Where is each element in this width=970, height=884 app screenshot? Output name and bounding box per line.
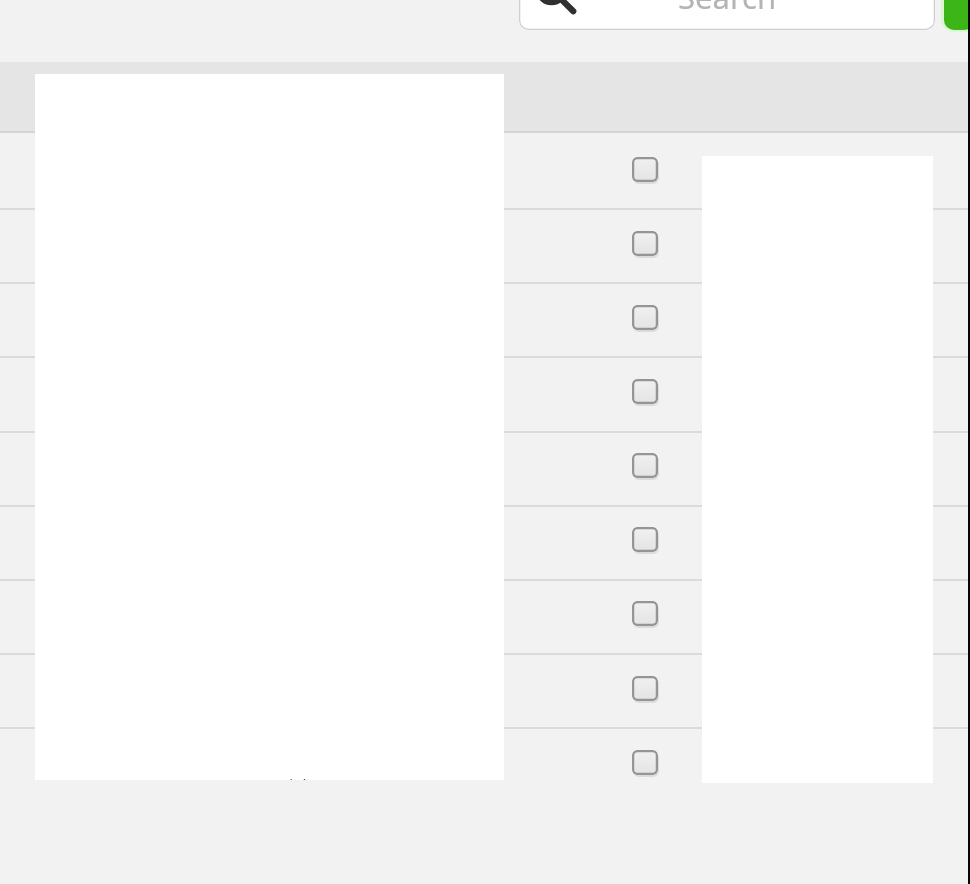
button[interactable]: Sort column	[0, 62, 970, 131]
button[interactable]: Select row 4	[632, 379, 658, 404]
button[interactable]: Select row 3	[632, 305, 658, 330]
button[interactable]: Add new	[944, 0, 970, 30]
button[interactable]: Select row 2	[632, 231, 658, 256]
button[interactable]: Select row 9	[632, 750, 658, 775]
staticText: Copyright	[248, 774, 318, 780]
button[interactable]: Select row 6	[632, 527, 658, 552]
button[interactable]: Select row 8	[632, 676, 658, 701]
staticText: Search	[678, 0, 777, 18]
button[interactable]: Search	[519, 0, 935, 30]
button[interactable]: Select row 1	[632, 157, 658, 182]
button[interactable]: Select row 7	[632, 601, 658, 626]
button[interactable]: Select row 5	[632, 453, 658, 478]
